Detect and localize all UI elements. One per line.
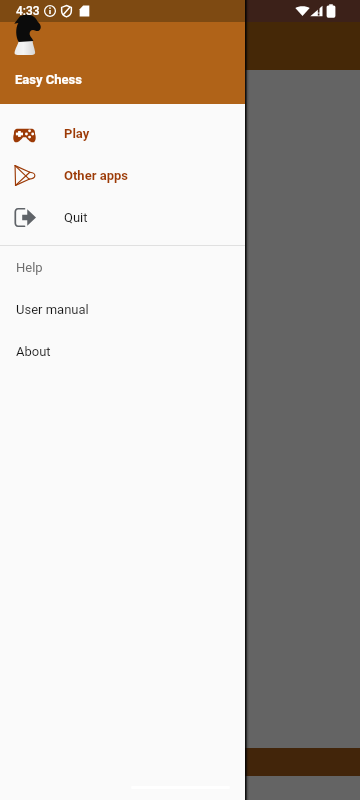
staticText: Quit bbox=[64, 210, 88, 225]
button[interactable]: Help bbox=[16, 246, 245, 288]
staticText: Play bbox=[64, 126, 90, 141]
button[interactable]: Other apps bbox=[0, 154, 245, 196]
staticText: Easy Chess bbox=[15, 72, 82, 87]
staticText: About bbox=[16, 344, 51, 359]
button[interactable]: Quit bbox=[0, 196, 245, 238]
button[interactable]: Play bbox=[0, 112, 245, 154]
button[interactable]: About bbox=[16, 330, 245, 372]
staticText: Other apps bbox=[64, 168, 128, 183]
button[interactable]: User manual bbox=[16, 288, 245, 330]
staticText: Help bbox=[16, 260, 43, 275]
staticText: User manual bbox=[16, 302, 89, 317]
staticText: 4:33 bbox=[16, 4, 40, 18]
